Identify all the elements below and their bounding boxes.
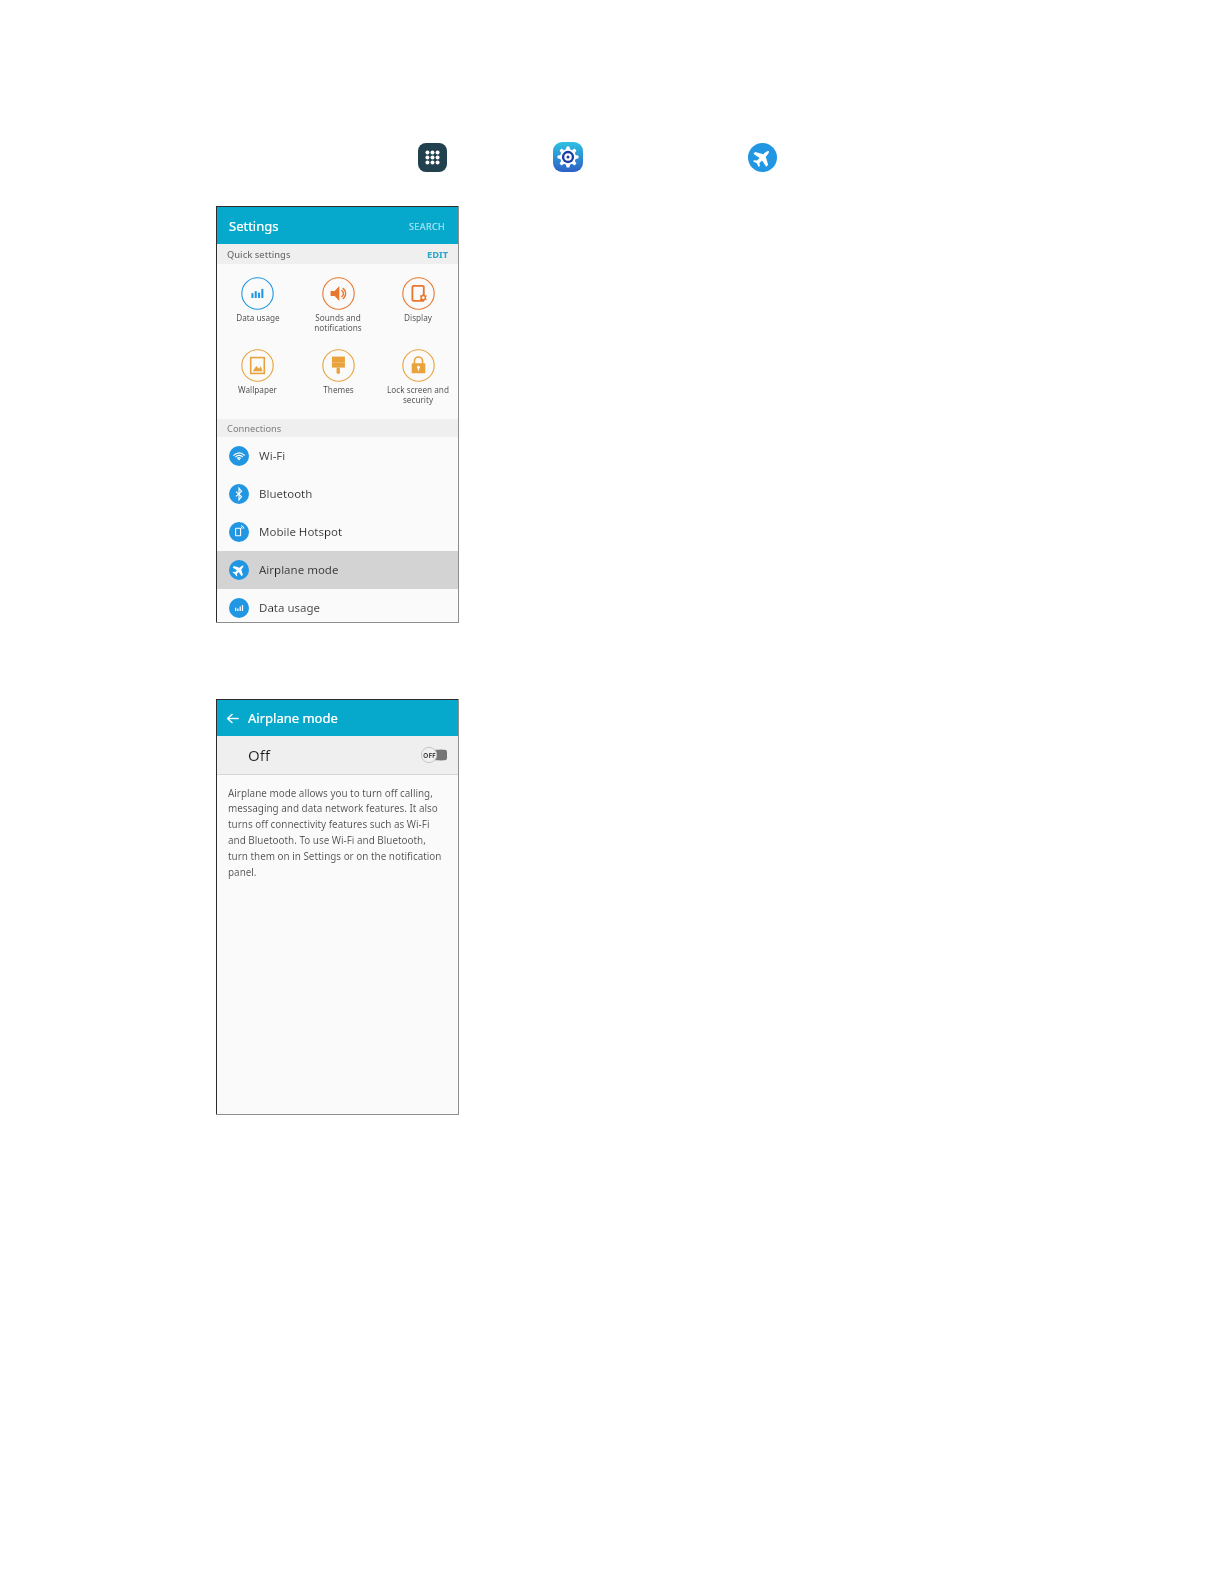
staticText: Airplane mode — [259, 562, 339, 578]
button[interactable]: Themes — [298, 336, 378, 395]
other: Back — [227, 713, 239, 724]
staticText: Wallpaper — [238, 384, 277, 395]
staticText: Mobile Hotspot — [259, 524, 343, 540]
button[interactable]: Airplane mode — [748, 143, 777, 172]
button[interactable]: Data usage — [217, 264, 298, 323]
button[interactable]: Quick settings — [217, 244, 458, 264]
button[interactable]: Back — [217, 700, 458, 736]
button[interactable]: Apps — [418, 143, 447, 172]
button[interactable]: Airplane mode — [217, 551, 458, 589]
button[interactable]: Airplane mode toggle, off — [421, 747, 447, 763]
staticText: Display — [404, 312, 432, 323]
staticText: Quick settings — [227, 248, 291, 261]
staticText: SEARCH — [409, 220, 446, 232]
staticText: Bluetooth — [259, 486, 313, 502]
staticText: Sounds and notifications — [314, 312, 362, 334]
button[interactable]: Off — [217, 736, 458, 774]
staticText: Airplane mode — [248, 709, 338, 727]
button[interactable]: Connections — [217, 419, 458, 437]
button[interactable]: Wallpaper — [217, 336, 298, 395]
button[interactable]: Lock screen and security — [378, 336, 458, 406]
button[interactable]: Settings — [553, 142, 583, 172]
staticText: Off — [248, 745, 271, 765]
staticText: Settings — [229, 217, 279, 235]
staticText: Data usage — [236, 312, 280, 323]
staticText: Data usage — [259, 600, 321, 616]
button[interactable]: Mobile Hotspot — [217, 513, 458, 551]
button[interactable]: Bluetooth — [217, 475, 458, 513]
button[interactable]: Wi-Fi — [217, 437, 458, 475]
button[interactable]: Settings — [217, 207, 458, 244]
staticText: Airplane mode allows you to turn off cal… — [228, 786, 442, 879]
staticText: Themes — [323, 384, 354, 395]
staticText: Connections — [227, 422, 282, 435]
staticText: Lock screen and security — [387, 384, 449, 406]
button[interactable]: Display — [378, 264, 458, 323]
button[interactable]: Data usage — [217, 589, 458, 622]
staticText: Wi-Fi — [259, 448, 286, 464]
staticText: EDIT — [427, 248, 448, 261]
button[interactable]: Sounds and notifications — [298, 264, 378, 334]
staticText: OFF — [423, 751, 436, 760]
